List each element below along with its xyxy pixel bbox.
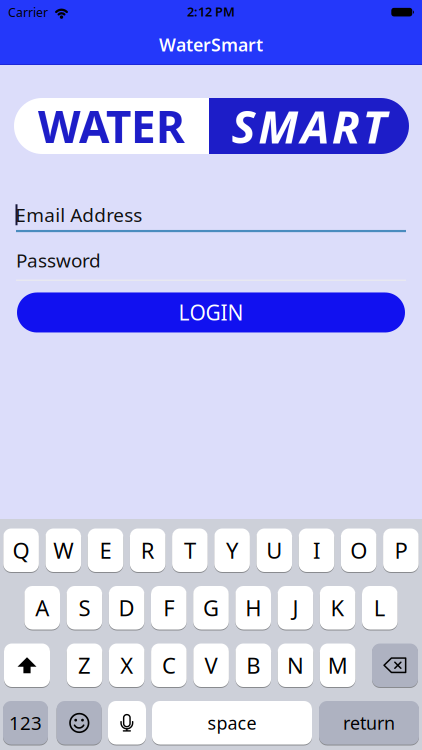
staticText: return bbox=[343, 711, 395, 735]
staticText: Carrier bbox=[8, 4, 48, 20]
staticText: Q bbox=[13, 536, 30, 565]
staticText: 123 bbox=[9, 710, 42, 735]
staticText: D bbox=[119, 593, 135, 622]
staticText: WATER bbox=[38, 96, 185, 156]
staticText: T bbox=[184, 536, 196, 565]
staticText: F bbox=[163, 593, 174, 622]
staticText: A bbox=[35, 593, 49, 622]
staticText: X bbox=[120, 651, 133, 680]
staticText: SMART bbox=[231, 95, 387, 157]
staticText: Z bbox=[78, 651, 91, 680]
staticText: S bbox=[78, 593, 90, 622]
staticText: Y bbox=[226, 536, 238, 565]
staticText: I bbox=[313, 536, 320, 565]
staticText: V bbox=[205, 651, 218, 680]
staticText: WaterSmart bbox=[159, 33, 263, 56]
staticText: N bbox=[287, 651, 304, 680]
staticText: U bbox=[266, 536, 282, 565]
staticText: Password bbox=[16, 248, 101, 273]
staticText: O bbox=[350, 536, 367, 565]
staticText: H bbox=[245, 593, 261, 622]
staticText: B bbox=[246, 651, 260, 680]
staticText: Email Address bbox=[15, 202, 142, 227]
staticText: L bbox=[374, 593, 386, 622]
staticText: R bbox=[141, 536, 155, 565]
staticText: E bbox=[99, 536, 111, 565]
staticText: P bbox=[394, 536, 407, 565]
staticText: W bbox=[53, 536, 73, 565]
staticText: space bbox=[207, 711, 256, 735]
staticText: 2:12 PM bbox=[187, 3, 235, 20]
staticText: C bbox=[162, 651, 176, 680]
staticText: M bbox=[328, 651, 348, 680]
staticText: J bbox=[292, 593, 298, 622]
staticText: G bbox=[203, 593, 219, 622]
staticText: K bbox=[331, 593, 345, 622]
staticText: LOGIN bbox=[178, 299, 243, 326]
